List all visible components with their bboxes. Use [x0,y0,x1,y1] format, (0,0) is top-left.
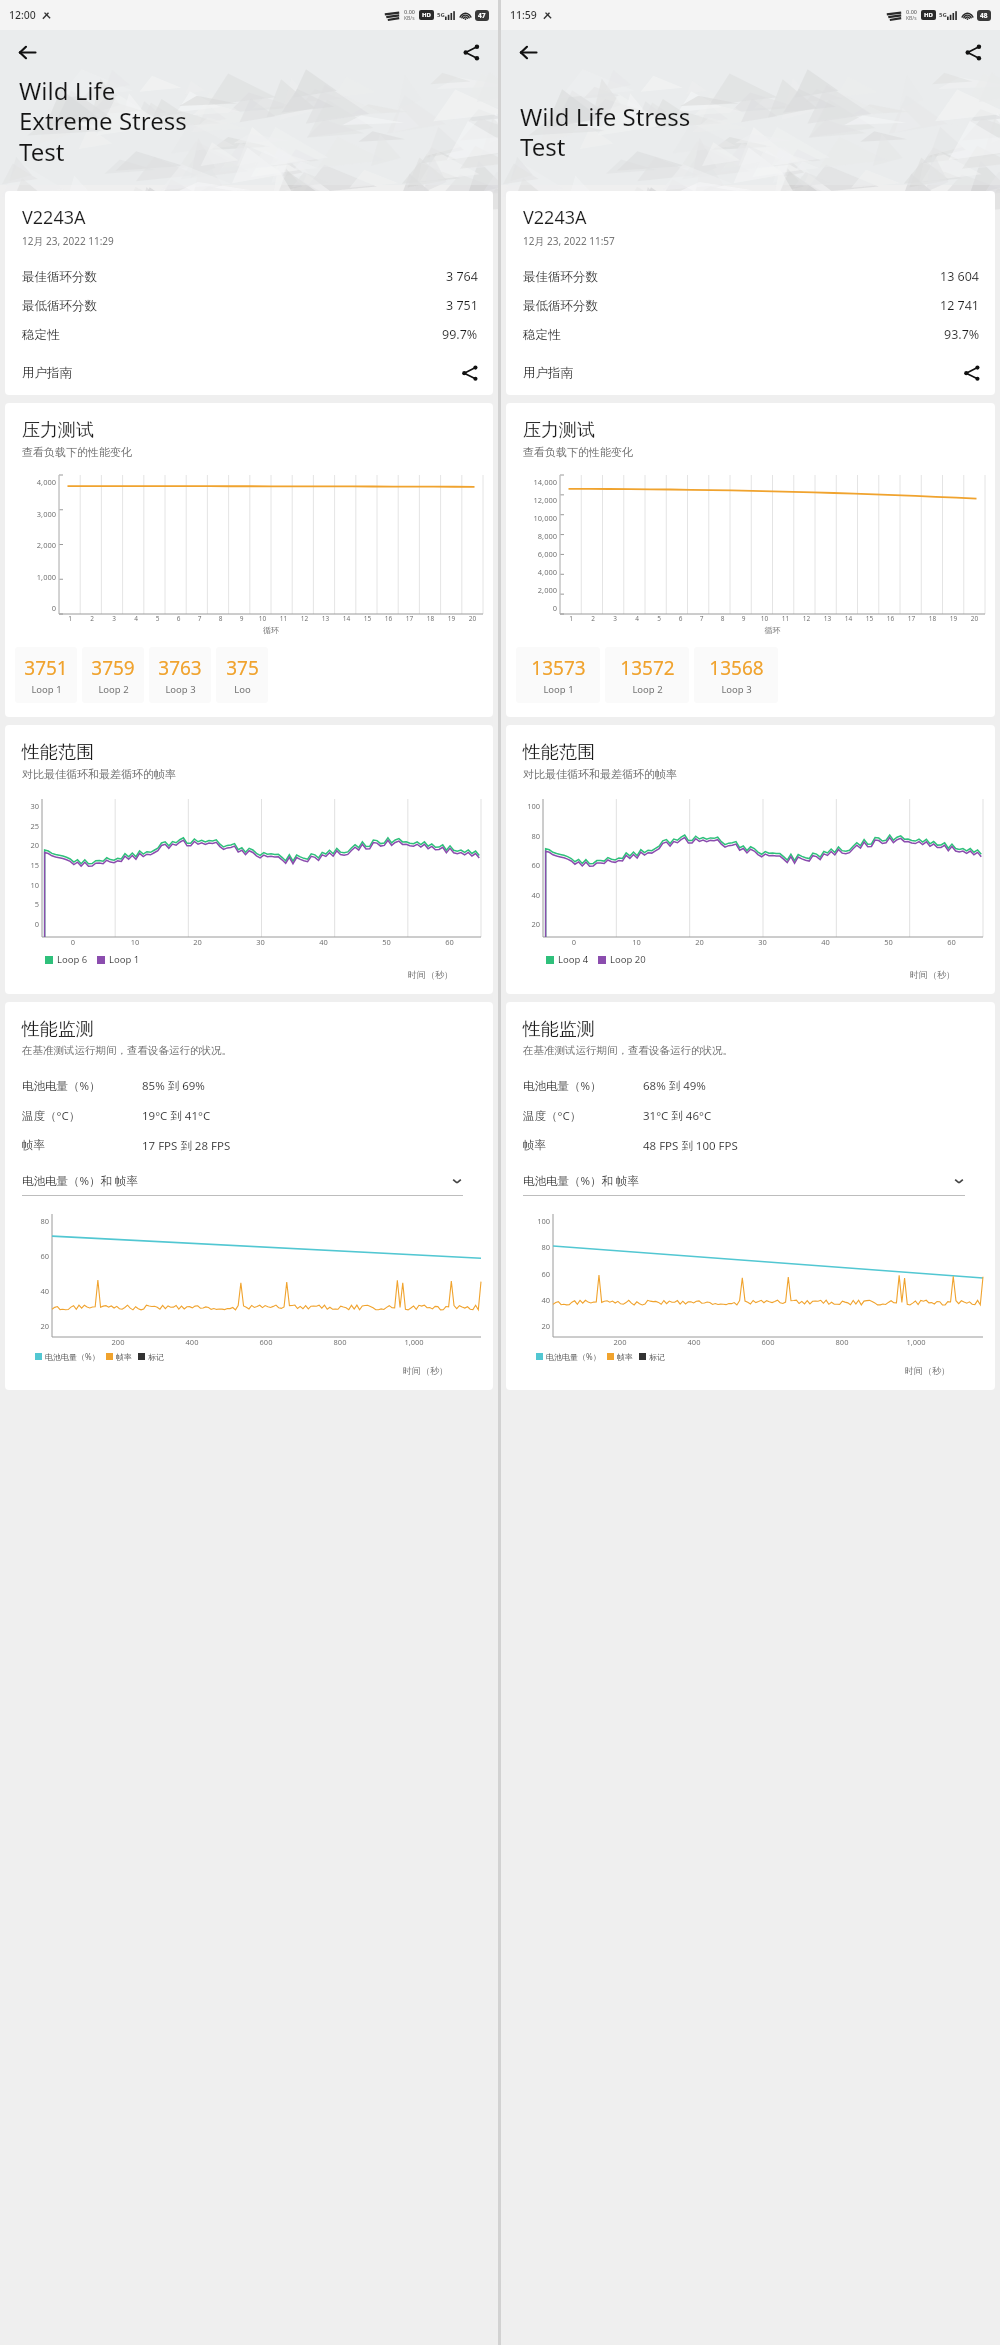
staticText: 15 [859,614,880,623]
staticText: 循环 [59,625,483,635]
staticText: 40 [514,890,540,900]
staticText: 200 [583,1337,657,1347]
staticText: 3 764 [446,268,478,285]
staticText: 帧率 [523,1138,643,1152]
staticText: 电池电量（%） [546,1351,601,1362]
staticText: Loop 3 [721,683,752,696]
button[interactable]: Back [10,35,44,69]
button[interactable]: 用户指南 [506,359,995,395]
staticText: 稳定性 [523,327,561,343]
staticText: 5 [147,614,168,623]
staticText: 13572 [620,655,675,681]
button[interactable]: 电池电量（%）和 帧率 [523,1173,965,1196]
staticText: 12 741 [940,297,980,314]
button[interactable]: Back [511,35,545,69]
staticText: 800 [303,1337,377,1347]
staticText: 8 [712,614,733,623]
staticText: 0 [42,937,104,947]
staticText: 375 [226,655,259,681]
staticText: 16 [378,614,399,623]
staticText: 10 [13,880,39,890]
staticText: 17 [901,614,922,623]
staticText: 3763 [158,655,202,681]
staticText: 4,000 [26,477,56,487]
staticText: 在基准测试运行期间，查看设备运行的状况。 [523,1044,733,1057]
button[interactable]: 3751 [15,647,77,703]
staticText: 93.7% [944,326,980,343]
staticText: 80 [514,831,540,841]
staticText: 16 [880,614,901,623]
staticText: 14 [838,614,859,623]
staticText: 帧率 [116,1352,132,1362]
button[interactable]: 13572 [605,647,689,703]
staticText: KB/s [906,15,917,22]
staticText: 25 [13,821,39,831]
staticText: 帧率 [22,1138,142,1152]
staticText: 3 [604,614,626,623]
button[interactable]: Share [454,35,488,69]
staticText: 时间（秒） [506,969,955,980]
staticText: 时间（秒） [506,1365,950,1376]
staticText: 20 [462,614,483,623]
staticText: 性能范围 [523,741,595,764]
staticText: 30 [731,937,794,947]
staticText: 200 [81,1337,155,1347]
staticText: 80 [528,1242,550,1252]
staticText: 1 [560,614,582,623]
staticText: 13 604 [940,268,980,285]
staticText: 10 [252,614,273,623]
button[interactable]: 电池电量（%）和 帧率 [22,1173,463,1196]
staticText: 2,000 [26,540,56,550]
staticText: 温度（°C） [22,1108,142,1124]
staticText: 温度（°C） [523,1108,643,1124]
staticText: 电池电量（%）和 帧率 [22,1173,139,1189]
staticText: 2 [582,614,604,623]
staticText: 4 [125,614,147,623]
button[interactable]: 用户指南 [5,359,493,395]
staticText: 4,000 [527,567,557,577]
staticText: 用户指南 [22,365,72,381]
staticText: 50 [857,937,920,947]
staticText: 11 [273,614,294,623]
staticText: 13568 [709,655,764,681]
button[interactable]: 13573 [516,647,600,703]
staticText: 9 [733,614,754,623]
staticText: 13 [315,614,336,623]
staticText: 48 [980,11,988,20]
staticText: Loop 1 [109,953,140,966]
staticText: 60 [528,1269,550,1279]
staticText: 最低循环分数 [22,298,97,314]
button[interactable]: 3763 [149,647,211,703]
staticText: 标记 [649,1352,665,1362]
staticText: 40 [528,1295,550,1305]
button[interactable]: 13568 [694,647,778,703]
staticText: 电池电量（%）和 帧率 [523,1173,640,1189]
button[interactable]: 3759 [82,647,144,703]
button[interactable]: 375 [216,647,268,703]
staticText: 时间（秒） [5,969,453,980]
staticText: 40 [794,937,857,947]
button[interactable]: Share [956,35,990,69]
staticText: 40 [292,937,355,947]
staticText: 12:00 [9,8,36,22]
staticText: 最佳循环分数 [523,269,598,285]
staticText: KB/s [404,15,415,22]
staticText: 20 [13,840,39,850]
staticText: Loop 3 [165,683,196,696]
staticText: 3759 [91,655,135,681]
staticText: 5 [648,614,670,623]
staticText: 20 [27,1321,49,1331]
staticText: 1,000 [879,1337,953,1347]
staticText: 60 [418,937,481,947]
staticText: 8,000 [527,531,557,541]
staticText: 3751 [24,655,68,681]
staticText: 13 [817,614,838,623]
staticText: HD [924,11,933,19]
staticText: 电池电量（%） [22,1078,142,1094]
staticText: 18 [922,614,943,623]
staticText: 31°C 到 46°C [643,1108,712,1124]
staticText: 性能监测 [523,1018,595,1041]
staticText: 400 [155,1337,229,1347]
staticText: 2,000 [527,585,557,595]
staticText: 17 FPS 到 28 FPS [142,1138,231,1154]
